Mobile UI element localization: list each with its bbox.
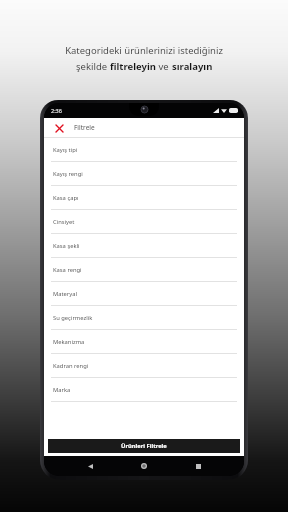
staticText: Kayış tipi [53,146,78,154]
staticText: Kayış rengi [53,170,83,178]
staticText: Mekanizma [53,338,85,346]
staticText: Kasa şekli [53,242,80,250]
button[interactable]: Kasa rengi [44,258,244,281]
button[interactable]: Mekanizma [44,330,244,353]
button[interactable]: Ürünleri Filtrele [48,439,240,453]
staticText: ve [156,60,172,73]
staticText: 2:36 [51,107,62,114]
button[interactable]: Geri [82,458,98,474]
staticText: Kategorideki ürünlerinizi istediğiniz [65,44,223,57]
button[interactable]: Marka [44,378,244,401]
button[interactable]: Kayış rengi [44,162,244,185]
button[interactable]: Kasa çapı [44,186,244,209]
button[interactable]: Kasa şekli [44,234,244,257]
button[interactable]: Kayış tipi [44,138,244,161]
button[interactable]: Ana ekran [136,458,152,474]
staticText: sıralayın [172,60,213,73]
button[interactable]: Su geçirmezlik [44,306,244,329]
staticText: Su geçirmezlik [53,314,93,322]
staticText: Marka [53,386,71,394]
staticText: Materyal [53,290,77,298]
button[interactable]: Kapat [53,122,65,134]
staticText: Ürünleri Filtrele [121,442,167,450]
staticText: Kasa çapı [53,194,79,202]
button[interactable]: Kapat [44,118,244,137]
button[interactable]: Cinsiyet [44,210,244,233]
staticText: Kadran rengi [53,362,89,370]
staticText: Kasa rengi [53,266,82,274]
button[interactable]: Kadran rengi [44,354,244,377]
staticText: şekilde [76,60,110,73]
staticText: Filtrele [74,123,95,132]
button[interactable]: Materyal [44,282,244,305]
staticText: Cinsiyet [53,218,75,226]
staticText: filtreleyin [110,60,156,73]
button[interactable]: Son uygulamalar [190,458,206,474]
